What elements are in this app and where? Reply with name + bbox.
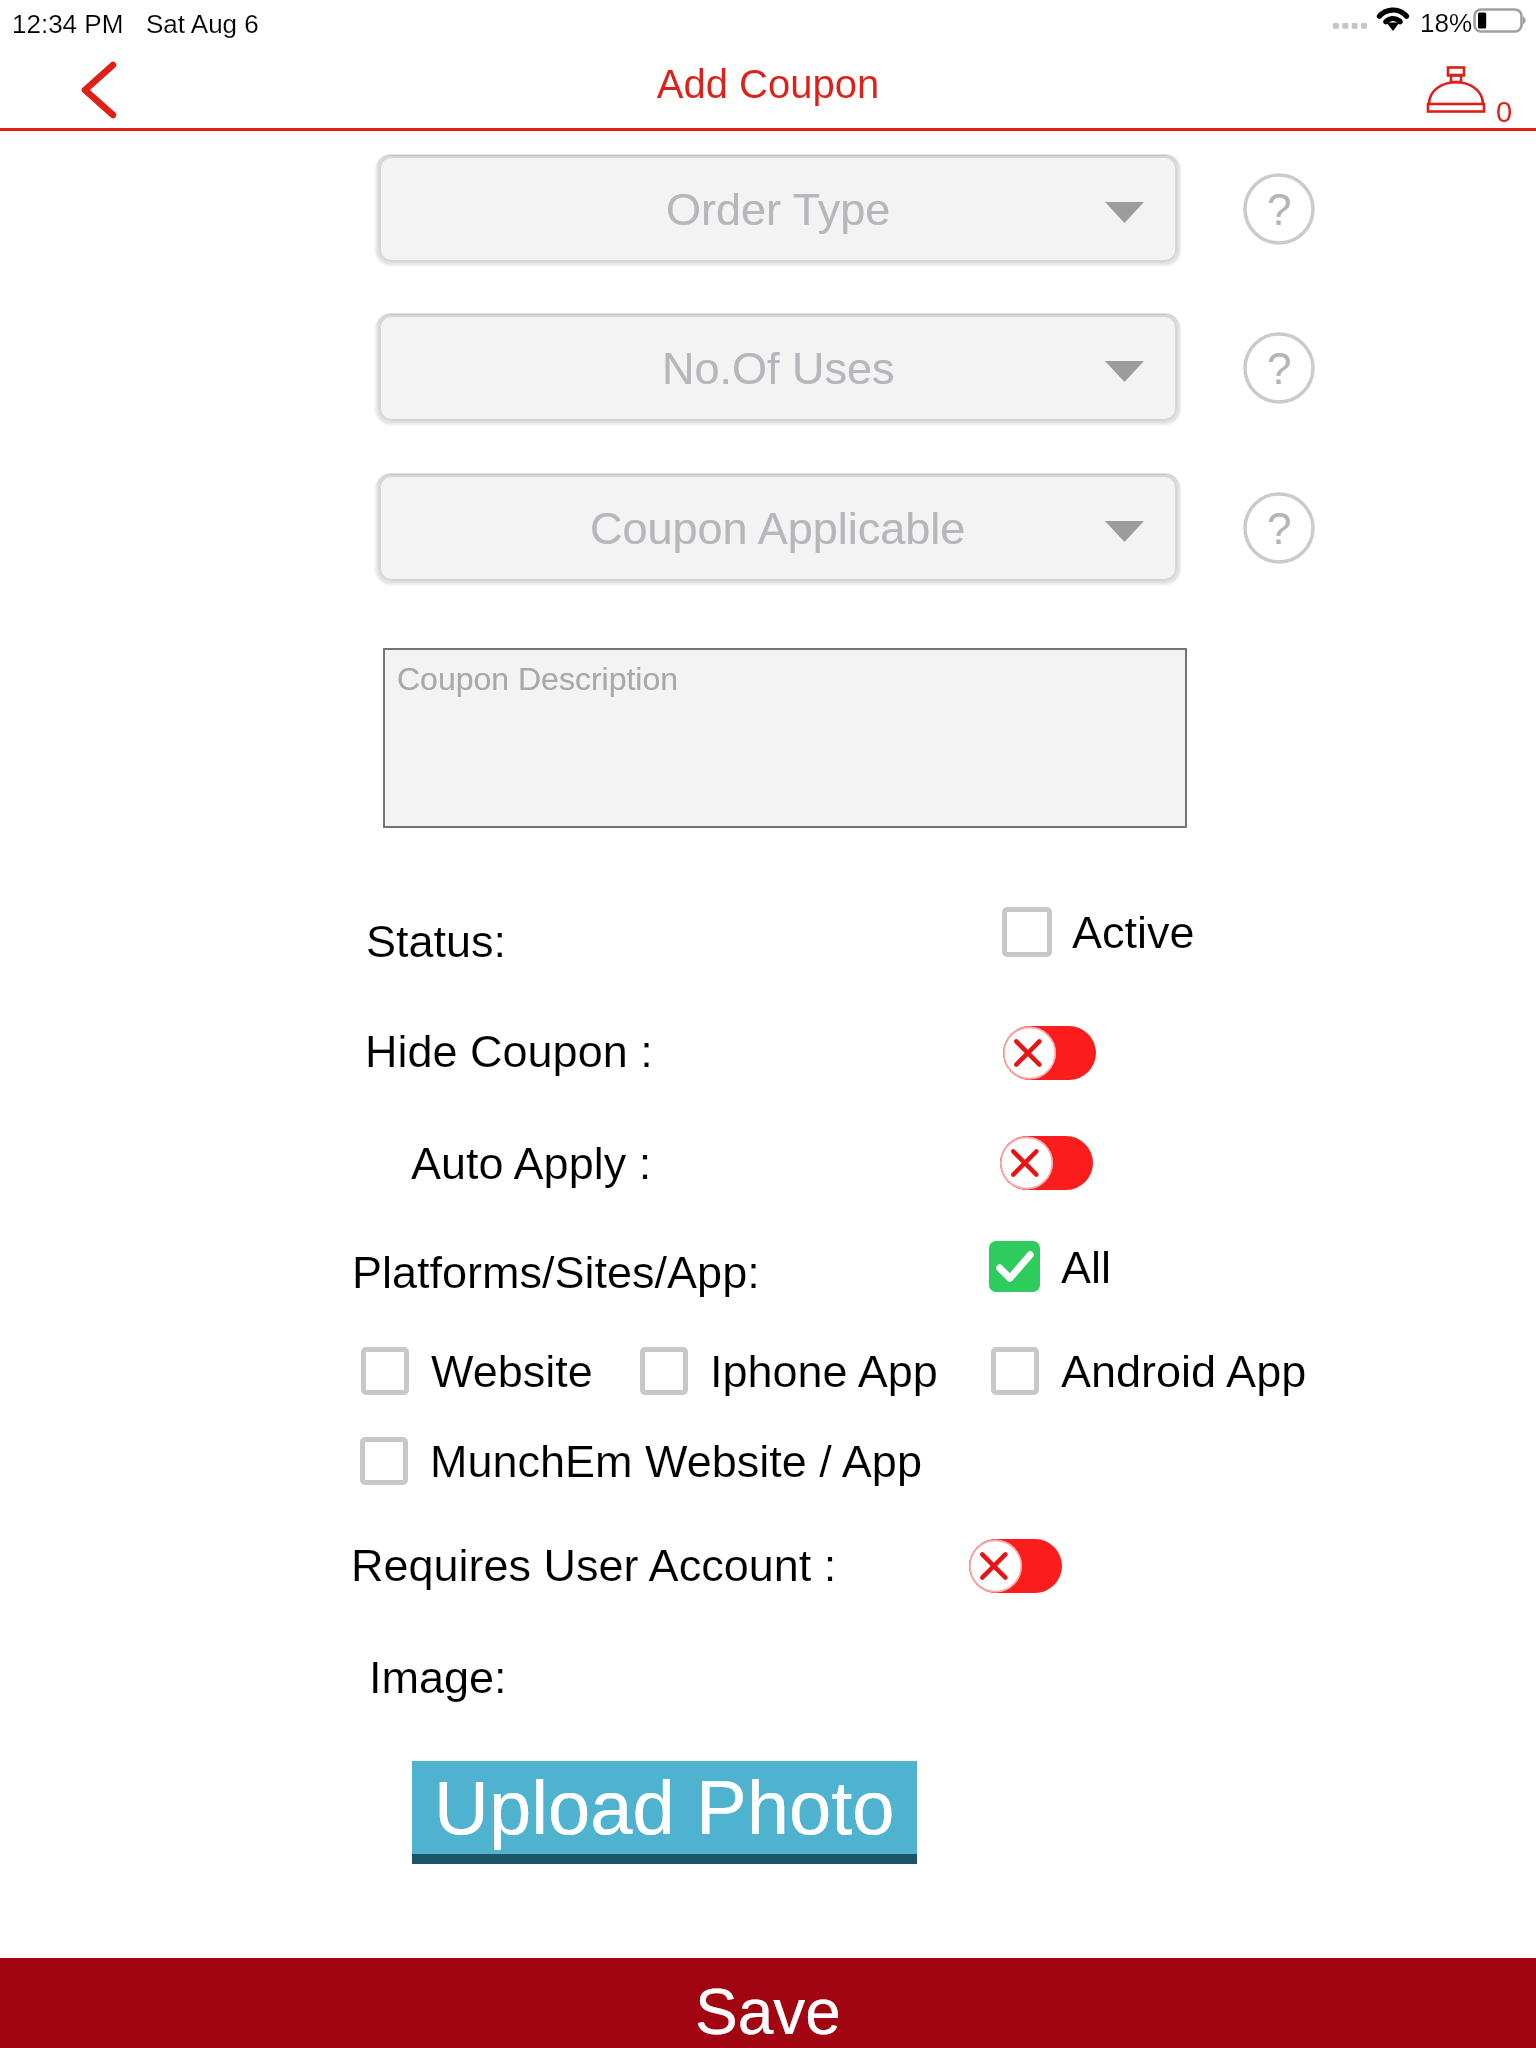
button[interactable]: Order Type bbox=[373, 150, 1183, 268]
staticText: Requires User Account : bbox=[351, 1540, 837, 1590]
button[interactable]: MunchEm Website / App bbox=[360, 1436, 922, 1486]
staticText: Upload Photo bbox=[434, 1765, 895, 1850]
button[interactable]: Coupon Applicable bbox=[373, 469, 1183, 587]
staticText: Hide Coupon : bbox=[365, 1026, 653, 1076]
button[interactable]: Help bbox=[1243, 173, 1315, 245]
staticText: Status: bbox=[366, 916, 507, 966]
staticText: All bbox=[1061, 1242, 1112, 1292]
staticText: Platforms/Sites/App: bbox=[352, 1247, 760, 1297]
button[interactable]: Orders bbox=[1418, 55, 1518, 125]
button[interactable]: All bbox=[989, 1241, 1112, 1292]
staticText: Sat Aug 6 bbox=[146, 9, 259, 38]
staticText: Website bbox=[431, 1346, 593, 1396]
staticText: ? bbox=[1267, 344, 1292, 393]
staticText: Active bbox=[1072, 907, 1195, 957]
button[interactable]: Back bbox=[64, 46, 130, 134]
button[interactable]: Auto Apply, off bbox=[1000, 1136, 1093, 1190]
button[interactable]: Active bbox=[1002, 907, 1195, 957]
button[interactable]: Website bbox=[361, 1346, 593, 1396]
button[interactable]: Requires User Account, off bbox=[969, 1539, 1062, 1593]
staticText: Iphone App bbox=[710, 1346, 938, 1396]
button[interactable]: Help bbox=[1243, 492, 1315, 564]
button[interactable]: Upload Photo bbox=[412, 1761, 917, 1864]
staticText: Add Coupon bbox=[0, 62, 1536, 107]
staticText: MunchEm Website / App bbox=[430, 1436, 922, 1486]
staticText: No.Of Uses bbox=[662, 343, 895, 393]
button[interactable]: Save bbox=[0, 1958, 1536, 2048]
staticText: Save bbox=[695, 1976, 841, 2048]
staticText: Coupon Description bbox=[397, 661, 679, 697]
staticText: ? bbox=[1267, 185, 1292, 234]
staticText: 12:34 PM bbox=[12, 9, 124, 38]
staticText: Auto Apply : bbox=[411, 1138, 652, 1188]
staticText: Image: bbox=[369, 1652, 507, 1702]
staticText: 0 bbox=[1496, 96, 1513, 128]
button[interactable]: Hide Coupon, off bbox=[1003, 1026, 1096, 1080]
staticText: Android App bbox=[1061, 1346, 1307, 1396]
button[interactable]: Android App bbox=[991, 1346, 1307, 1396]
button[interactable]: No.Of Uses bbox=[373, 309, 1183, 427]
button[interactable]: Iphone App bbox=[640, 1346, 938, 1396]
staticText: Coupon Applicable bbox=[590, 503, 966, 553]
button[interactable]: Help bbox=[1243, 332, 1315, 404]
staticText: Order Type bbox=[666, 184, 891, 234]
staticText: 18% bbox=[1420, 8, 1473, 37]
staticText: ? bbox=[1267, 504, 1292, 553]
button[interactable]: Coupon Description bbox=[383, 648, 1187, 828]
